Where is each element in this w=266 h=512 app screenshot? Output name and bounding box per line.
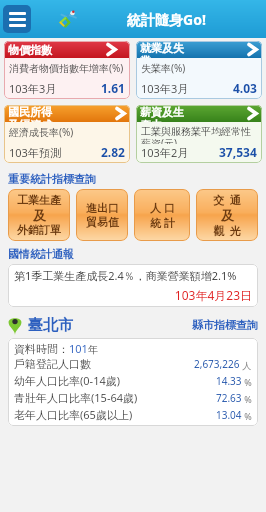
staticText: 戶籍登記人口數 bbox=[14, 357, 91, 371]
staticText: 經濟成長率(%) bbox=[9, 125, 74, 139]
staticText: 就業及失業 bbox=[140, 41, 193, 58]
staticText: 重要統計指標查詢 bbox=[8, 172, 96, 186]
staticText: 及 bbox=[33, 207, 46, 223]
staticText: 103年預測 bbox=[9, 145, 61, 160]
staticText: 國民所得及經濟成長 bbox=[8, 105, 61, 122]
button[interactable]: 國民所得及經濟成長 bbox=[4, 105, 130, 163]
staticText: 老年人口比率(65歲以上) bbox=[14, 407, 133, 422]
staticText: 資料時間： bbox=[14, 342, 69, 356]
staticText: 消費者物價指數年增率(%) bbox=[9, 61, 124, 75]
staticText: 國情統計通報 bbox=[8, 247, 74, 261]
staticText: % bbox=[242, 376, 252, 388]
staticText: % bbox=[242, 393, 252, 405]
staticText: 72.63 bbox=[216, 391, 242, 405]
staticText: 2,673,226 bbox=[194, 357, 240, 371]
staticText: 年 bbox=[88, 343, 98, 356]
staticText: 外銷訂單 bbox=[17, 223, 61, 237]
staticText: 薪資及生產力 bbox=[140, 105, 193, 122]
staticText: 工業與服務業平均經常性薪資(元) bbox=[141, 125, 257, 144]
staticText: 4.03 bbox=[233, 80, 257, 96]
staticText: 統計隨身Go! bbox=[127, 10, 206, 29]
staticText: 進出口 bbox=[86, 201, 119, 215]
staticText: 103年3月 bbox=[9, 81, 57, 96]
staticText: 工業生產 bbox=[17, 193, 61, 207]
staticText: 37,534 bbox=[219, 144, 257, 160]
staticText: 101 bbox=[69, 341, 88, 356]
button[interactable]: 進出口 bbox=[76, 189, 128, 241]
staticText: 人 口 bbox=[150, 200, 175, 215]
staticText: 幼年人口比率(0-14歲) bbox=[14, 373, 121, 388]
button[interactable]: Menu bbox=[3, 5, 31, 33]
staticText: 13.04 bbox=[216, 408, 242, 422]
button[interactable]: 工業生產 bbox=[8, 189, 70, 241]
button[interactable]: 人 口 bbox=[134, 189, 190, 241]
staticText: 103年4月23日 bbox=[14, 287, 252, 303]
button[interactable]: 第1季工業生產成長2.4％，商業營業額增2.1% bbox=[8, 264, 258, 307]
staticText: 交 通 bbox=[213, 192, 241, 207]
staticText: 統 計 bbox=[150, 215, 175, 230]
staticText: 人 bbox=[240, 359, 252, 371]
staticText: 1.61 bbox=[101, 80, 125, 96]
staticText: 失業率(%) bbox=[141, 61, 186, 75]
staticText: 青壯年人口比率(15-64歲) bbox=[14, 390, 138, 405]
staticText: % bbox=[242, 410, 252, 422]
button[interactable]: 薪資及生產力 bbox=[136, 105, 262, 163]
button[interactable]: 交 通 bbox=[196, 189, 258, 241]
staticText: 物價指數 bbox=[8, 43, 52, 57]
button[interactable]: 資料時間： bbox=[8, 338, 258, 426]
button[interactable]: 就業及失業 bbox=[136, 41, 262, 99]
staticText: 14.33 bbox=[216, 374, 242, 388]
staticText: 第1季工業生產成長2.4％，商業營業額增2.1% bbox=[14, 268, 237, 283]
button[interactable]: 物價指數 bbox=[4, 41, 130, 99]
staticText: 及 bbox=[221, 207, 234, 223]
button[interactable]: 縣市指標查詢 bbox=[192, 318, 258, 332]
staticText: 103年3月 bbox=[141, 81, 189, 96]
staticText: 觀 光 bbox=[213, 223, 241, 238]
button[interactable]: 臺北市 bbox=[28, 316, 73, 335]
staticText: 2.82 bbox=[101, 144, 125, 160]
staticText: 103年2月 bbox=[141, 145, 189, 160]
staticText: 貿易值 bbox=[86, 215, 119, 229]
